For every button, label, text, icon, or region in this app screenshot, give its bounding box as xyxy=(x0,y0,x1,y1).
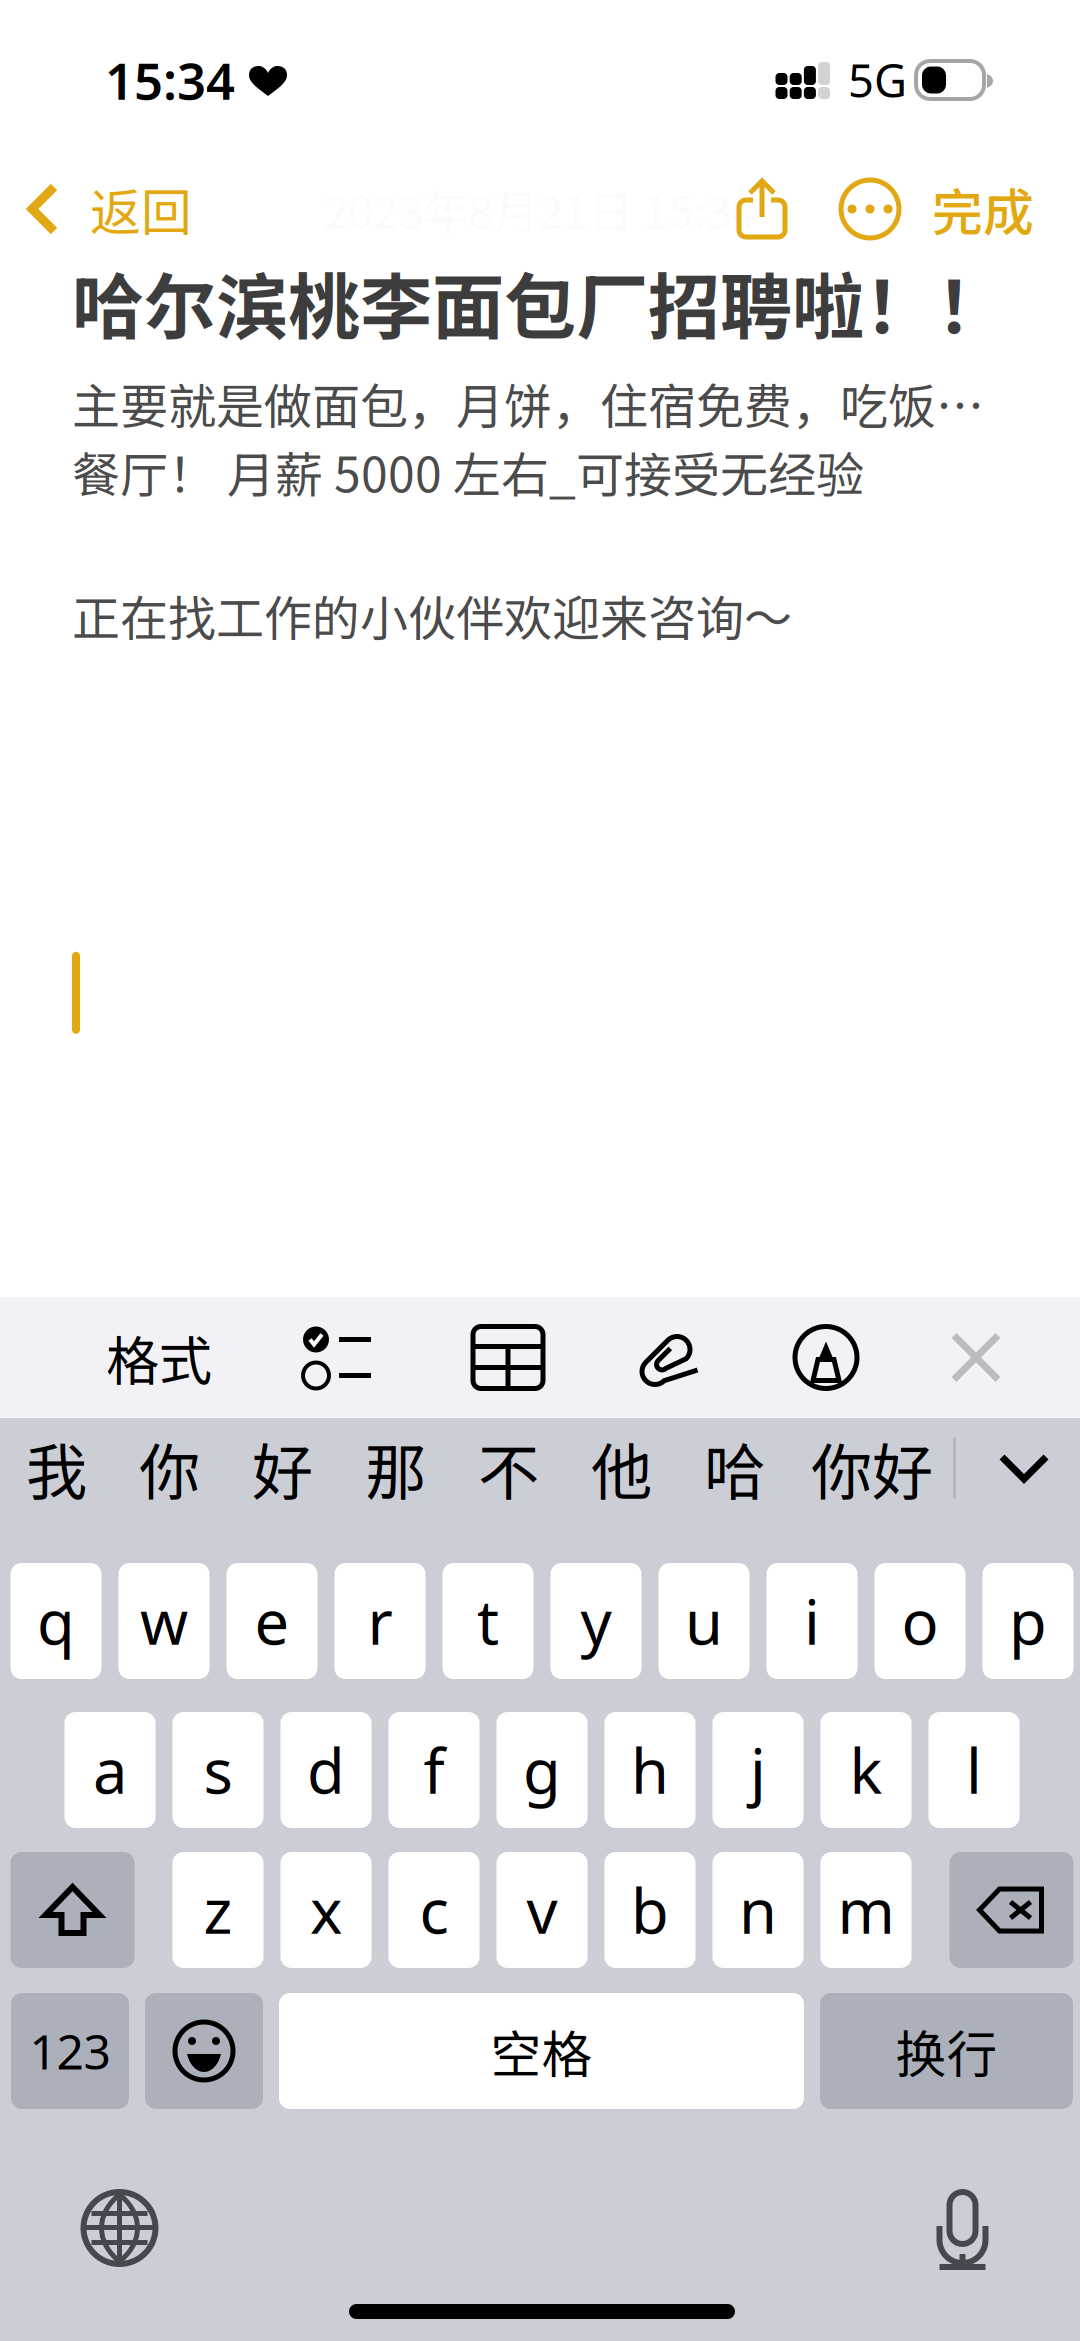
button[interactable]: m xyxy=(820,1852,911,1968)
button[interactable]: k xyxy=(820,1712,911,1828)
button[interactable]: 换行 xyxy=(820,1993,1073,2109)
button[interactable]: 你好 xyxy=(791,1418,953,1518)
button[interactable]: b xyxy=(604,1852,695,1968)
button[interactable]: u xyxy=(658,1563,749,1679)
staticText: 我 xyxy=(26,1424,87,1512)
staticText: 哈 xyxy=(704,1424,765,1512)
button[interactable]: 他 xyxy=(565,1418,678,1518)
button[interactable]: s xyxy=(172,1712,263,1828)
staticText: z xyxy=(203,1869,232,1951)
staticText: 正在找工作的小伙伴欢迎来咨询～ xyxy=(72,580,792,650)
button[interactable]: d xyxy=(280,1712,371,1828)
button[interactable]: p xyxy=(982,1563,1073,1679)
staticText: 你好 xyxy=(811,1424,933,1512)
staticText: 空格 xyxy=(490,2014,592,2088)
staticText: 你 xyxy=(139,1424,200,1512)
staticText: r xyxy=(367,1580,392,1662)
button[interactable]: q xyxy=(10,1563,101,1679)
button[interactable]: 格式 xyxy=(89,1297,229,1418)
button[interactable]: More xyxy=(816,159,924,259)
staticText: 换行 xyxy=(895,2014,997,2088)
staticText: t xyxy=(477,1580,499,1662)
button[interactable]: Collapse keyboard xyxy=(964,1418,1080,1518)
button[interactable]: z xyxy=(172,1852,263,1968)
button[interactable]: Table xyxy=(444,1297,572,1418)
button[interactable]: 好 xyxy=(226,1418,339,1518)
button[interactable]: l xyxy=(928,1712,1019,1828)
staticText: c xyxy=(419,1869,448,1951)
staticText: 返回 xyxy=(90,172,192,246)
button[interactable]: Emoji xyxy=(145,1993,263,2109)
staticText: m xyxy=(837,1869,894,1951)
staticText: 哈尔滨桃李面包厂招聘啦！！ xyxy=(72,250,1008,354)
button[interactable]: r xyxy=(334,1563,425,1679)
staticText: j xyxy=(750,1729,766,1811)
staticText: l xyxy=(966,1729,982,1811)
staticText: 完成 xyxy=(932,172,1034,246)
button[interactable]: 不 xyxy=(452,1418,565,1518)
button[interactable]: x xyxy=(280,1852,371,1968)
button[interactable]: a xyxy=(64,1712,155,1828)
button[interactable]: 你 xyxy=(113,1418,226,1518)
button[interactable]: f xyxy=(388,1712,479,1828)
button[interactable]: 空格 xyxy=(279,1993,804,2109)
staticText: s xyxy=(203,1729,232,1811)
button[interactable]: Shift xyxy=(10,1852,134,1968)
staticText: 格式 xyxy=(106,1319,212,1396)
button[interactable]: y xyxy=(550,1563,641,1679)
staticText: g xyxy=(523,1729,561,1811)
staticText: 2023年8月21日 15:34 xyxy=(323,176,756,242)
staticText: q xyxy=(37,1580,75,1662)
staticText: e xyxy=(254,1580,289,1662)
button[interactable]: Switch keyboard xyxy=(71,2179,168,2277)
staticText: y xyxy=(580,1580,611,1662)
staticText: i xyxy=(804,1580,820,1662)
button[interactable]: t xyxy=(442,1563,533,1679)
button[interactable]: c xyxy=(388,1852,479,1968)
button[interactable]: o xyxy=(874,1563,965,1679)
button[interactable]: n xyxy=(712,1852,803,1968)
staticText: 他 xyxy=(591,1424,652,1512)
button[interactable]: h xyxy=(604,1712,695,1828)
staticText: o xyxy=(901,1580,938,1662)
button[interactable]: Delete xyxy=(949,1852,1073,1968)
button[interactable]: Checklist xyxy=(273,1297,401,1418)
button[interactable]: j xyxy=(712,1712,803,1828)
staticText: f xyxy=(423,1729,444,1811)
staticText: u xyxy=(685,1580,723,1662)
button[interactable]: Share xyxy=(708,159,816,259)
staticText: 那 xyxy=(365,1424,426,1512)
staticText: 15:34 xyxy=(105,46,235,114)
button[interactable]: Markup xyxy=(762,1297,890,1418)
staticText: v xyxy=(526,1869,557,1951)
button[interactable]: Attach xyxy=(602,1297,730,1418)
button[interactable]: 完成 xyxy=(924,159,1080,259)
button[interactable]: 返回 xyxy=(0,159,208,259)
staticText: w xyxy=(140,1580,188,1662)
staticText: n xyxy=(739,1869,777,1951)
button[interactable]: 我 xyxy=(0,1418,113,1518)
staticText: 好 xyxy=(252,1424,313,1512)
staticText: 123 xyxy=(29,2019,110,2083)
button[interactable]: 哈 xyxy=(678,1418,791,1518)
staticText: 5G xyxy=(848,50,907,110)
staticText: 不 xyxy=(478,1424,539,1512)
button[interactable]: Close xyxy=(916,1297,1036,1418)
staticText: a xyxy=(93,1729,127,1811)
staticText: 餐厅！ 月薪 5000 左右_可接受无经验 xyxy=(72,437,864,506)
button[interactable]: g xyxy=(496,1712,587,1828)
staticText: h xyxy=(631,1729,669,1811)
button[interactable]: i xyxy=(766,1563,857,1679)
button[interactable]: e xyxy=(226,1563,317,1679)
staticText: k xyxy=(849,1729,882,1811)
staticText: 主要就是做面包，月饼，住宿免费，吃饭福利 xyxy=(72,368,1010,438)
button[interactable]: Dictation xyxy=(914,2179,1011,2277)
button[interactable]: w xyxy=(118,1563,209,1679)
button[interactable]: 123 xyxy=(11,1993,129,2109)
button[interactable]: 那 xyxy=(339,1418,452,1518)
staticText: p xyxy=(1009,1580,1047,1662)
button[interactable]: v xyxy=(496,1852,587,1968)
staticText: b xyxy=(631,1869,669,1951)
staticText: x xyxy=(310,1869,342,1951)
staticText: d xyxy=(307,1729,345,1811)
